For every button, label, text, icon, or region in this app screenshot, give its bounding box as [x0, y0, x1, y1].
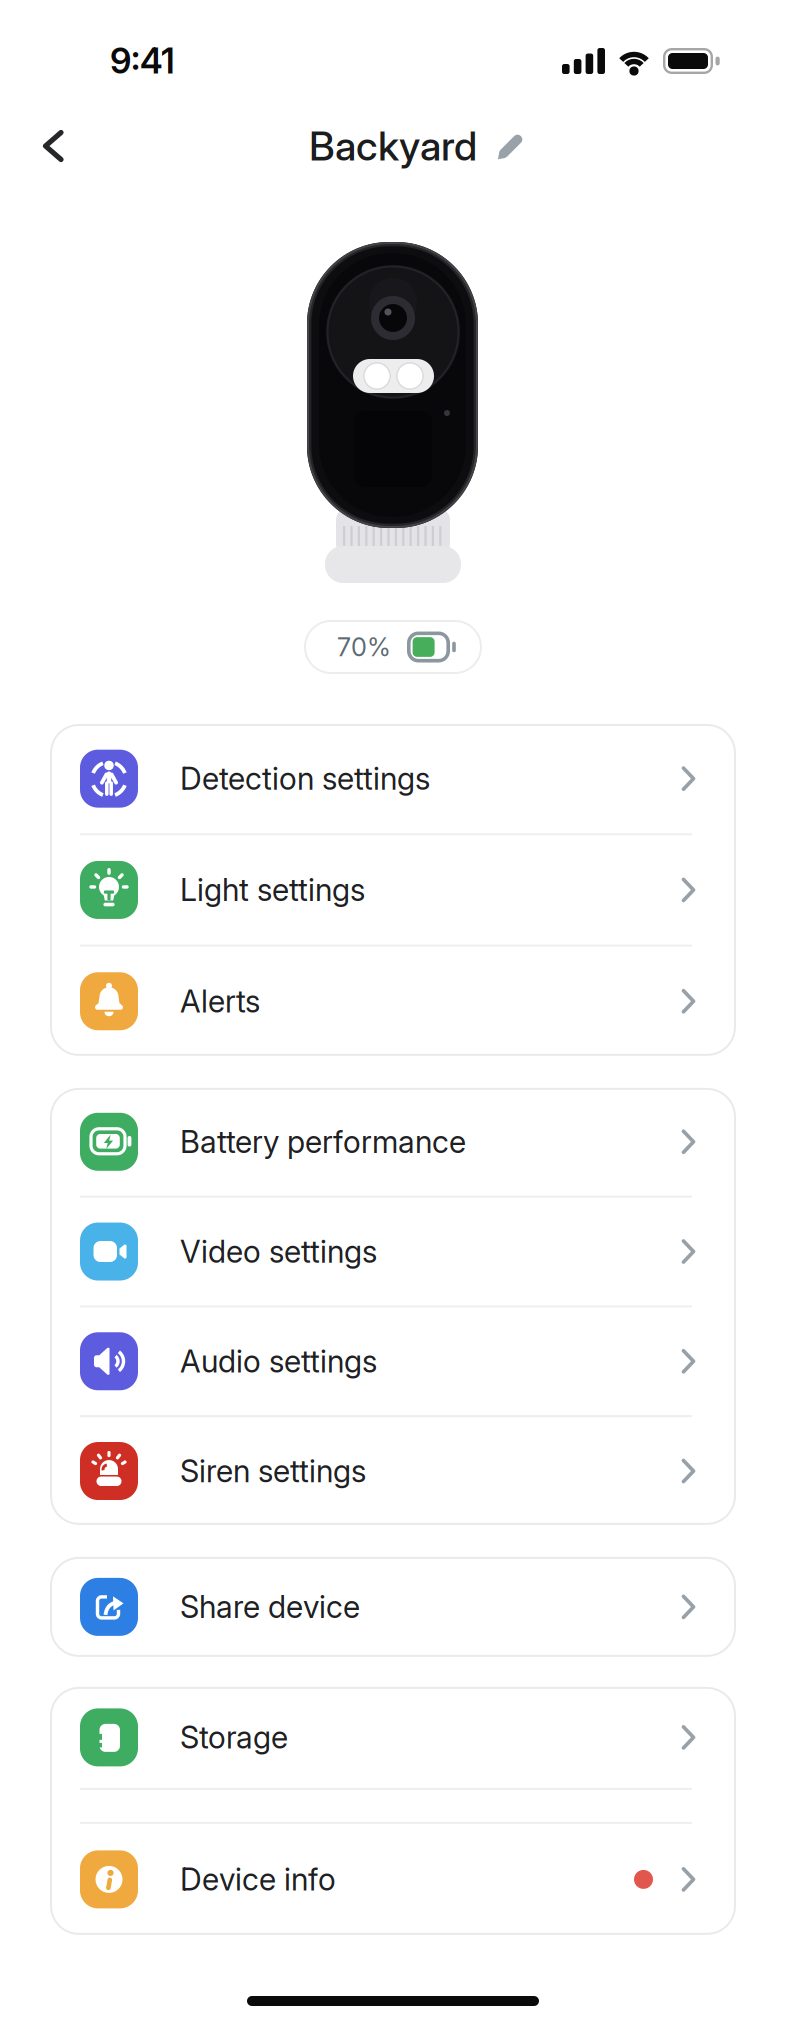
button[interactable]: Rename device: [494, 130, 525, 161]
button[interactable]: Siren settings: [50, 1417, 736, 1525]
button[interactable]: Detection settings: [50, 724, 736, 833]
staticText: Share device: [180, 1589, 360, 1625]
button[interactable]: Alerts: [50, 947, 736, 1056]
button[interactable]: Back: [0, 101, 88, 190]
staticText: Audio settings: [180, 1343, 377, 1379]
button[interactable]: Share device: [50, 1557, 736, 1657]
button[interactable]: Light settings: [50, 835, 736, 945]
staticText: Light settings: [180, 872, 365, 908]
staticText: Video settings: [180, 1233, 377, 1270]
staticText: 9:41: [110, 41, 175, 81]
staticText: Backyard: [309, 122, 477, 170]
button[interactable]: Audio settings: [50, 1307, 736, 1415]
staticText: 70%: [337, 632, 391, 662]
staticText: Siren settings: [180, 1453, 366, 1489]
staticText: Battery performance: [180, 1124, 466, 1160]
button[interactable]: Battery performance: [50, 1088, 736, 1196]
staticText: Alerts: [180, 983, 260, 1019]
staticText: Detection settings: [180, 761, 430, 797]
button[interactable]: Storage: [50, 1687, 736, 1788]
staticText: Storage: [180, 1719, 288, 1755]
button[interactable]: Video settings: [50, 1198, 736, 1305]
staticText: Device info: [180, 1861, 336, 1897]
button[interactable]: Device info: [50, 1824, 736, 1935]
